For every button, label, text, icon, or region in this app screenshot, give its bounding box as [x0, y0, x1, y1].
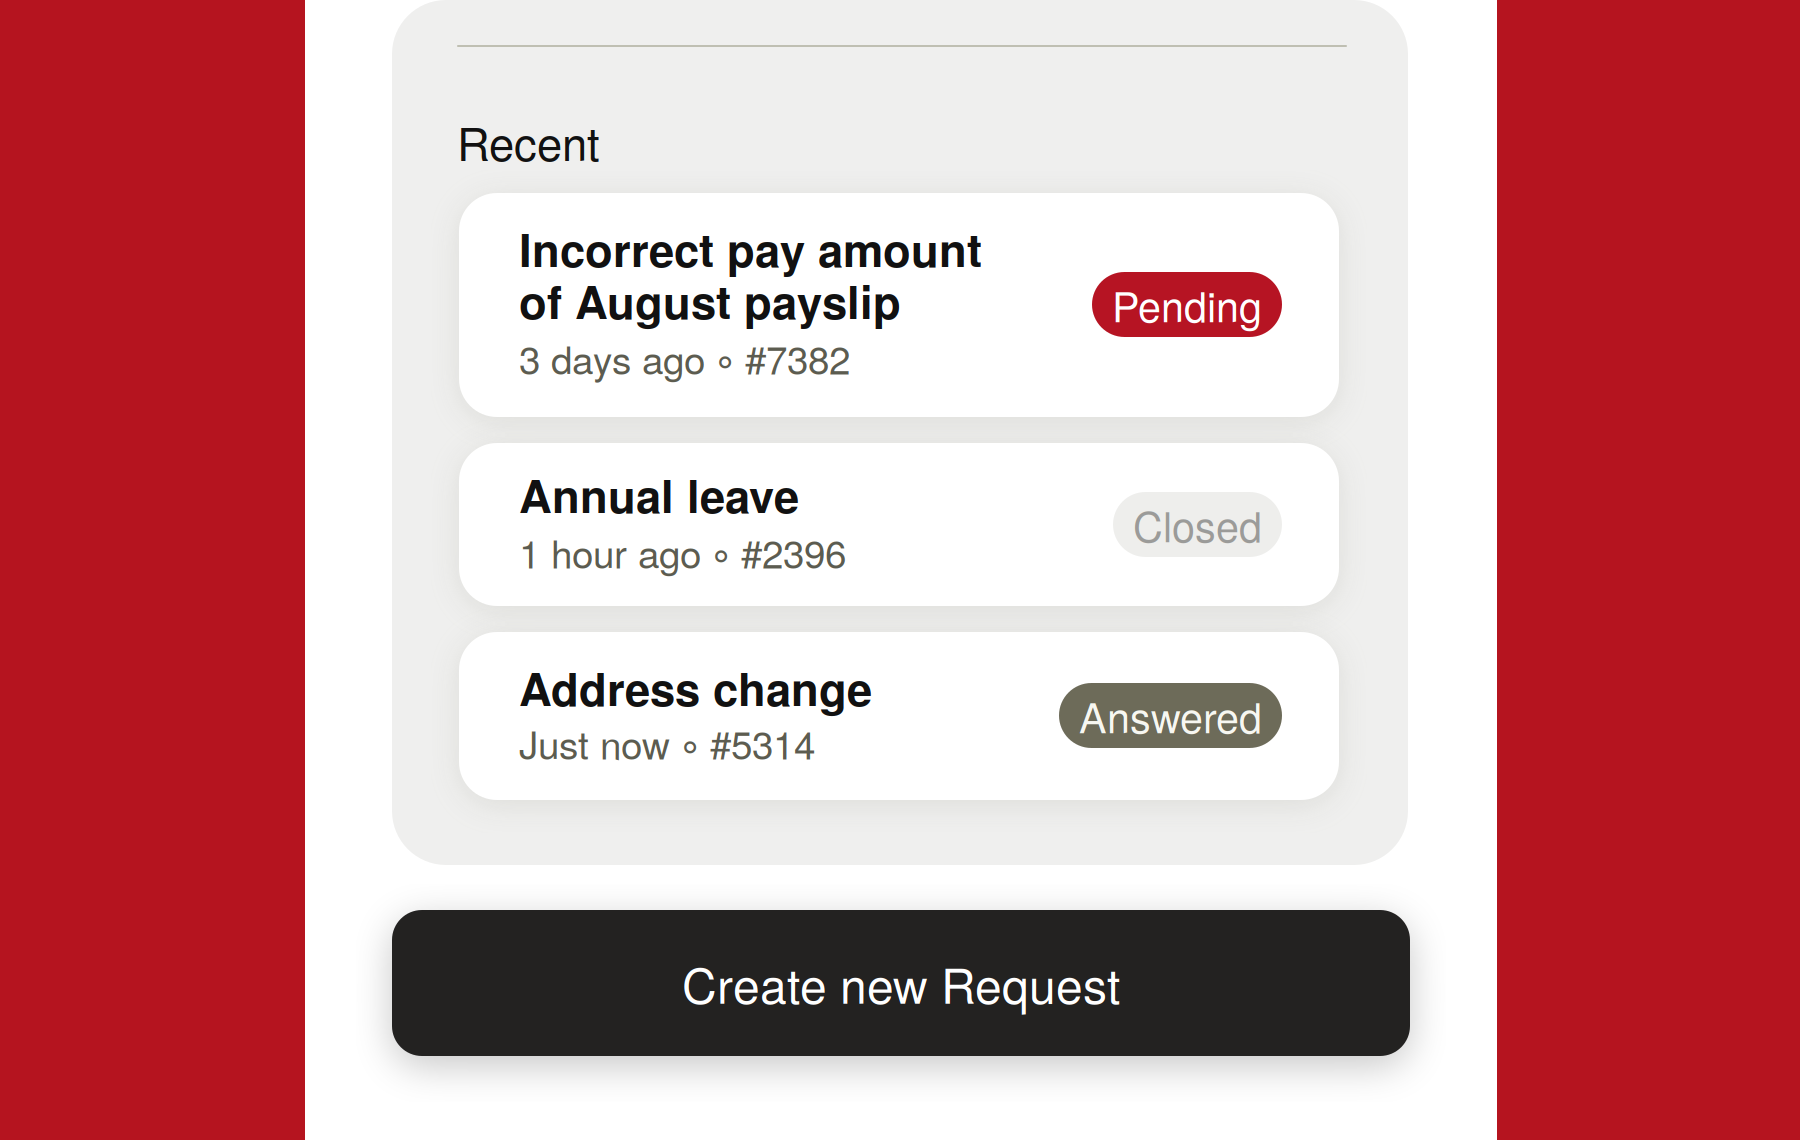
staticText: 3 days ago ∘ #7382	[519, 330, 850, 385]
button[interactable]: Create new Request	[392, 910, 1410, 1056]
button[interactable]: Annual leave	[459, 443, 1339, 606]
staticText: Just now ∘ #5314	[519, 715, 815, 770]
staticText: Pending	[1112, 275, 1262, 334]
staticText: Incorrect pay amount	[519, 216, 982, 281]
button[interactable]: Address change	[459, 632, 1339, 800]
staticText: Address change	[519, 655, 872, 720]
staticText: Answered	[1079, 686, 1262, 745]
staticText: Closed	[1133, 495, 1262, 554]
staticText: Annual leave	[519, 462, 799, 527]
button[interactable]: Incorrect pay amount	[459, 193, 1339, 417]
staticText: 1 hour ago ∘ #2396	[519, 524, 846, 579]
staticText: Recent	[457, 109, 600, 174]
staticText: of August payslip	[519, 268, 901, 333]
staticText: Create new Request	[682, 949, 1120, 1017]
